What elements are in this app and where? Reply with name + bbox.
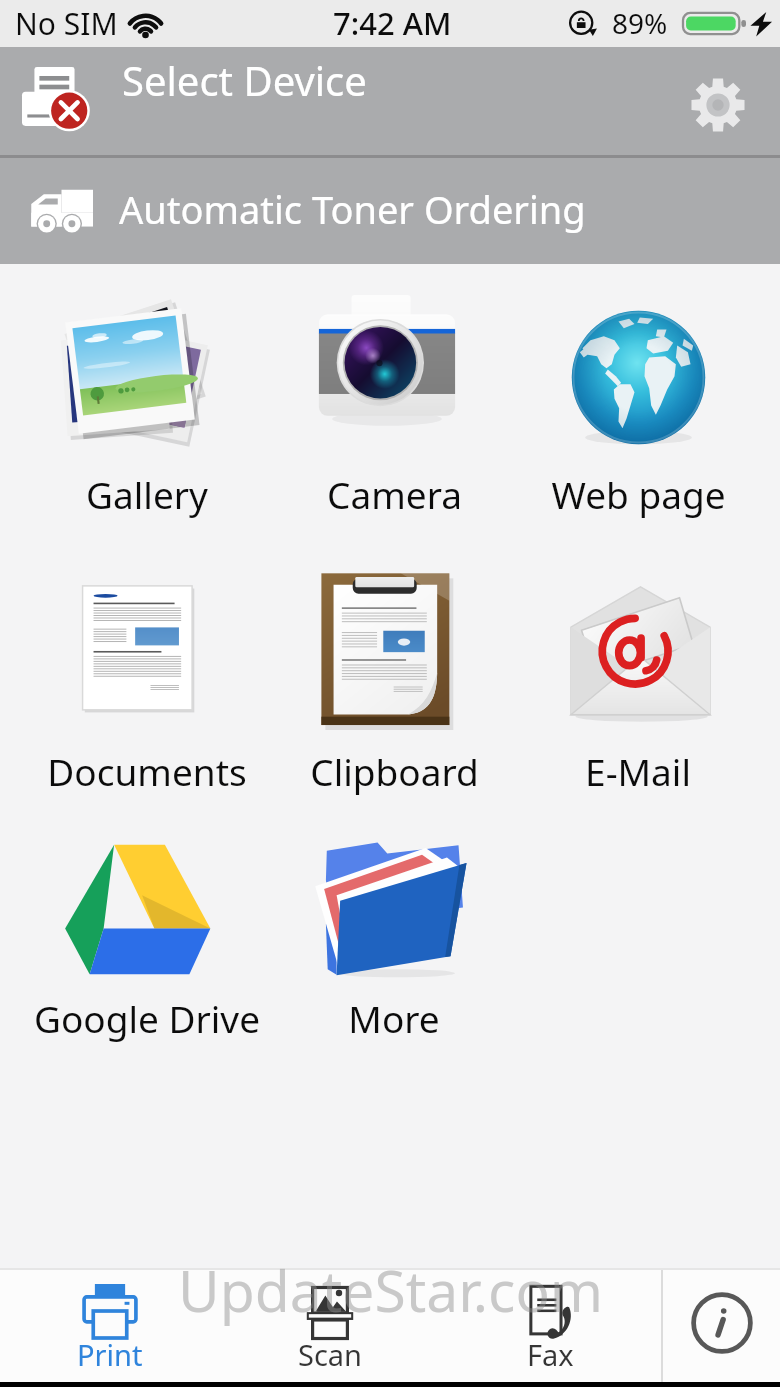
staticText: Automatic Toner Ordering [119,183,586,235]
button[interactable]: More [272,796,516,1051]
staticText: Camera [327,469,462,519]
button[interactable]: Print [35,1268,185,1382]
staticText: More [348,993,440,1043]
button[interactable]: Fax [475,1268,625,1382]
staticText: Documents [47,746,247,796]
staticText: UpdateStar.com [178,1251,604,1329]
staticText: 7:42 AM [333,2,452,44]
staticText: Clipboard [310,746,479,796]
button[interactable]: Scan [255,1268,405,1382]
staticText: Select Device [122,53,367,107]
button[interactable]: Documents [25,541,269,804]
button[interactable]: Gallery [25,265,269,527]
other: Select printer [22,67,93,129]
staticText: Fax [527,1335,574,1374]
button[interactable]: Select printer [0,47,780,158]
button[interactable]: Google Drive [25,796,269,1051]
staticText: Google Drive [34,993,260,1043]
staticText: Web page [551,469,726,519]
button[interactable]: Settings [672,61,760,149]
staticText: Print [77,1335,143,1374]
staticText: E-Mail [585,746,691,796]
button[interactable]: Information [663,1268,780,1382]
button[interactable]: Automatic Toner Ordering [0,158,780,264]
button[interactable]: E-Mail [516,541,760,804]
button[interactable]: Clipboard [272,541,516,804]
staticText: Scan [298,1335,363,1374]
staticText: No SIM [15,3,118,44]
staticText: 89% [612,4,668,42]
button[interactable]: Web page [516,265,760,527]
button[interactable]: Camera [272,265,516,527]
staticText: Gallery [86,469,208,519]
